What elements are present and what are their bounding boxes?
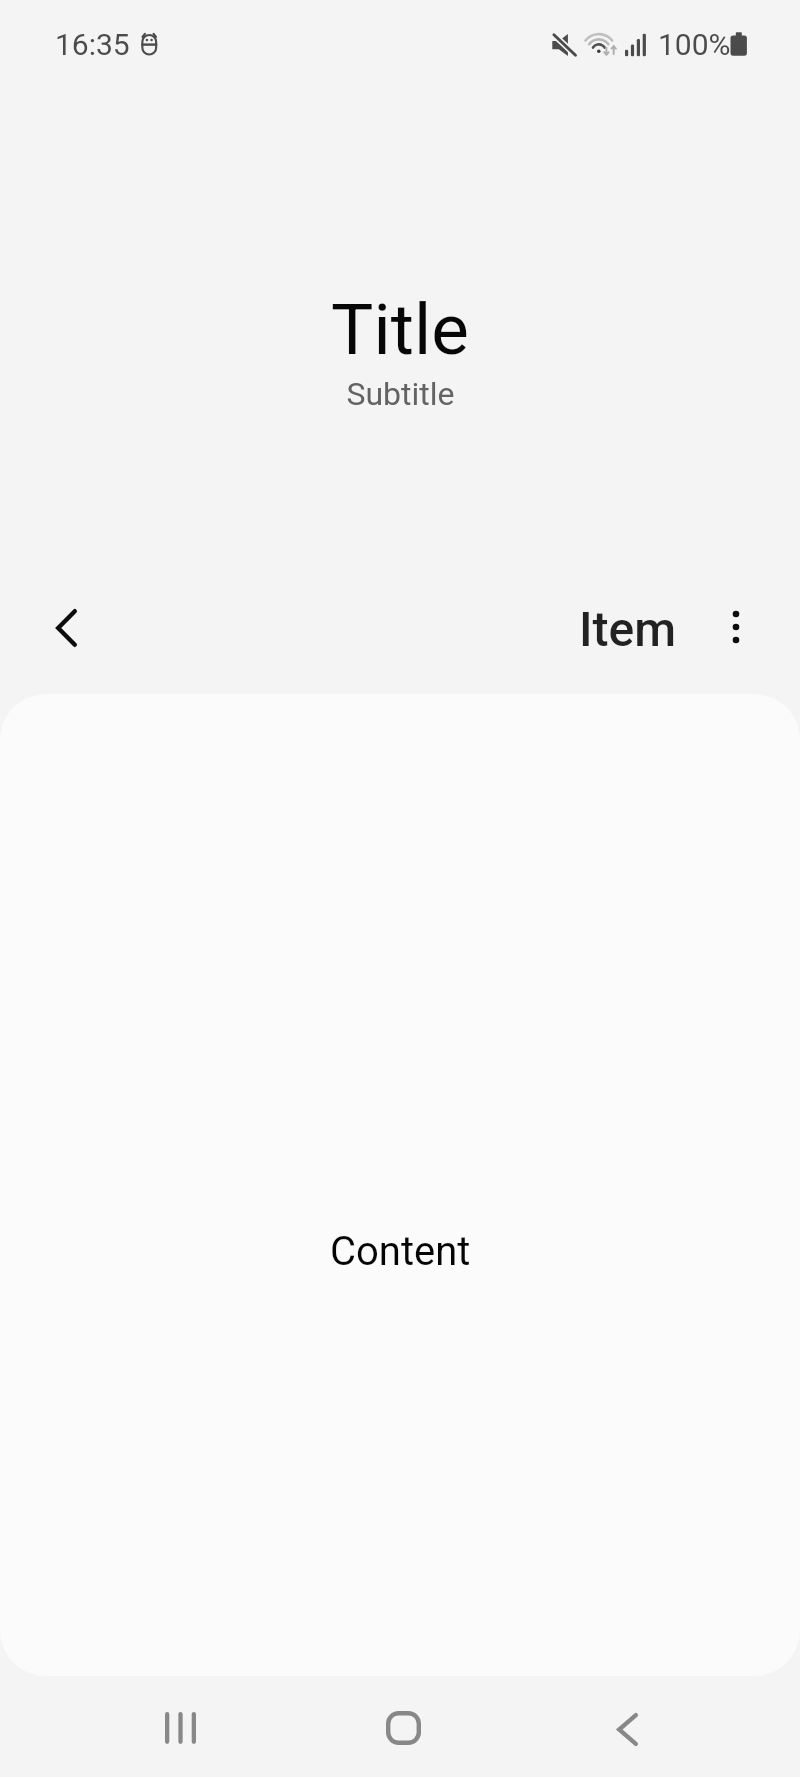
staticText: 16:35: [55, 27, 130, 62]
staticText: Item: [579, 601, 677, 657]
button[interactable]: Recent apps: [135, 1683, 225, 1773]
button[interactable]: More options: [694, 585, 778, 669]
button[interactable]: Item: [564, 593, 692, 665]
button[interactable]: Navigate up: [24, 585, 109, 670]
staticText: Content: [330, 1228, 471, 1275]
staticText: 100%: [658, 27, 731, 62]
button[interactable]: Home: [358, 1683, 448, 1773]
staticText: Subtitle: [346, 375, 455, 413]
staticText: Title: [331, 288, 469, 371]
button[interactable]: Back: [582, 1684, 672, 1774]
